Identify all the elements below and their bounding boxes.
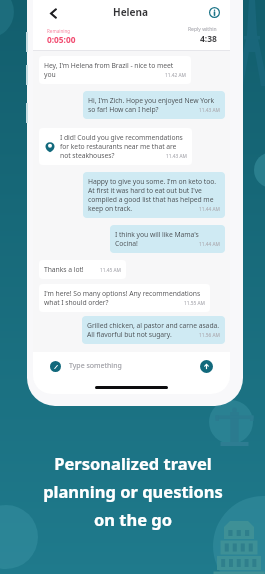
button[interactable]: Attach file	[50, 361, 61, 372]
staticText: 4:38	[200, 33, 217, 45]
staticText: Personalized travel planning or question…	[43, 452, 223, 531]
staticText: 11.43 AM	[199, 107, 220, 114]
button[interactable]: I'm here! So many options! Any recommend…	[39, 284, 210, 312]
staticText: 11.44 AM	[199, 241, 220, 248]
button[interactable]: Grilled chicken, al pastor and carne asa…	[82, 316, 225, 344]
button[interactable]: Back	[44, 4, 62, 22]
staticText: Grilled chicken, al pastor and carne asa…	[87, 321, 220, 339]
staticText: Reply within	[188, 26, 217, 33]
staticText: Hi, I'm Zich. Hope you enjoyed New York …	[88, 96, 220, 114]
staticText: 11.45 AM	[100, 267, 121, 274]
staticText: 11.43 AM	[166, 153, 187, 160]
button[interactable]: Happy to give you some. I'm on keto too.…	[83, 172, 225, 218]
button[interactable]: Send	[200, 360, 213, 373]
staticText: 11.44 AM	[199, 206, 220, 213]
staticText: Hey, I'm Helena from Brazil - nice to me…	[44, 61, 186, 79]
staticText: I did! Could you give recommendations fo…	[60, 133, 187, 160]
staticText: I'm here! So many options! Any recommend…	[44, 289, 205, 307]
staticText: Thanks a lot!	[44, 265, 104, 274]
button[interactable]: Hi, I'm Zich. Hope you enjoyed New York …	[83, 91, 225, 119]
button[interactable]: Hey, I'm Helena from Brazil - nice to me…	[39, 56, 191, 84]
button[interactable]: I did! Could you give recommendations fo…	[39, 128, 192, 165]
staticText: Type something	[69, 361, 122, 371]
staticText: I think you will like Mama's Cocina!	[115, 230, 220, 248]
button[interactable]: I think you will like Mama's Cocina!	[110, 225, 225, 253]
staticText: Happy to give you some. I'm on keto too.…	[88, 177, 220, 213]
staticText: Helena	[113, 5, 149, 19]
staticText: 11.42 AM	[165, 72, 186, 79]
button[interactable]: Info	[206, 4, 222, 20]
staticText: 0:05:00	[47, 34, 76, 45]
staticText: Remaining	[47, 28, 71, 34]
staticText: 11.55 AM	[184, 300, 205, 307]
button[interactable]: Thanks a lot!	[39, 260, 126, 279]
staticText: 11.56 AM	[199, 332, 220, 339]
